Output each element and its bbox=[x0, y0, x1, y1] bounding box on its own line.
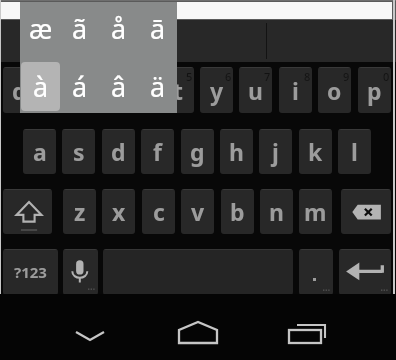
staticText: l bbox=[351, 136, 358, 167]
button[interactable]: Home bbox=[172, 316, 224, 350]
staticText: b bbox=[230, 196, 245, 227]
staticText: o bbox=[327, 75, 342, 106]
staticText: s bbox=[73, 136, 85, 167]
button[interactable]: l bbox=[338, 129, 371, 174]
staticText: v bbox=[191, 196, 205, 227]
staticText: x bbox=[112, 196, 126, 227]
staticText: a bbox=[33, 136, 47, 167]
staticText: p bbox=[367, 75, 382, 106]
button[interactable]: s bbox=[62, 129, 95, 174]
button[interactable]: k bbox=[299, 129, 332, 174]
staticText: ã bbox=[72, 10, 88, 47]
button[interactable]: v bbox=[181, 189, 214, 234]
staticText: h bbox=[229, 136, 244, 167]
staticText: 9 bbox=[343, 69, 350, 84]
staticText: ?123 bbox=[14, 262, 47, 282]
button[interactable]: o bbox=[318, 67, 351, 113]
button[interactable]: Voice input bbox=[63, 249, 98, 295]
button[interactable]: p bbox=[358, 67, 391, 113]
button[interactable]: z bbox=[63, 189, 96, 234]
staticText: å bbox=[111, 10, 127, 47]
button[interactable]: d bbox=[102, 129, 135, 174]
staticText: c bbox=[153, 196, 165, 227]
button[interactable]: ä bbox=[138, 62, 177, 111]
staticText: g bbox=[190, 136, 205, 167]
button[interactable]: Period bbox=[299, 249, 333, 295]
button[interactable]: f bbox=[141, 129, 174, 174]
button[interactable]: á bbox=[60, 62, 99, 111]
staticText: 8 bbox=[304, 69, 311, 84]
button[interactable]: â bbox=[99, 62, 138, 111]
button[interactable]: h bbox=[220, 129, 253, 174]
staticText: ā bbox=[150, 10, 166, 47]
staticText: u bbox=[248, 75, 263, 106]
button[interactable]: Recent apps bbox=[283, 316, 333, 350]
staticText: i bbox=[292, 75, 299, 106]
staticText: 5 bbox=[186, 69, 193, 84]
staticText: á bbox=[72, 68, 88, 105]
button[interactable]: ã bbox=[60, 4, 99, 53]
button[interactable]: Space bbox=[103, 249, 293, 295]
button[interactable]: Hide keyboard bbox=[66, 320, 114, 350]
button[interactable]: i bbox=[279, 67, 312, 113]
staticText: ä bbox=[150, 68, 166, 105]
staticText: 0 bbox=[383, 69, 390, 84]
staticText: æ bbox=[29, 10, 53, 47]
button[interactable]: ā bbox=[138, 4, 177, 53]
button[interactable]: Enter bbox=[339, 249, 391, 295]
button[interactable]: m bbox=[299, 189, 332, 234]
staticText: f bbox=[153, 136, 162, 167]
button[interactable]: Symbols bbox=[3, 249, 58, 295]
button[interactable]: æ bbox=[21, 4, 60, 53]
staticText: d bbox=[111, 136, 126, 167]
staticText: 6 bbox=[225, 69, 232, 84]
staticText: k bbox=[308, 136, 323, 167]
staticText: n bbox=[269, 196, 284, 227]
staticText: w bbox=[49, 75, 69, 106]
staticText: m bbox=[304, 196, 327, 227]
button[interactable]: u bbox=[239, 67, 272, 113]
button[interactable]: a bbox=[23, 129, 56, 174]
button[interactable]: w bbox=[42, 67, 75, 113]
staticText: y bbox=[210, 75, 224, 106]
staticText: â bbox=[111, 68, 127, 105]
staticText: j bbox=[272, 136, 279, 167]
button[interactable]: n bbox=[260, 189, 293, 234]
button[interactable]: q bbox=[3, 67, 36, 113]
button[interactable]: t bbox=[161, 67, 194, 113]
button[interactable]: r bbox=[121, 67, 154, 113]
button[interactable]: x bbox=[102, 189, 135, 234]
button[interactable]: y bbox=[200, 67, 233, 113]
button[interactable]: e bbox=[82, 67, 115, 113]
staticText: q bbox=[12, 75, 27, 106]
button[interactable]: g bbox=[181, 129, 214, 174]
button[interactable]: à bbox=[21, 62, 60, 111]
button[interactable]: Delete bbox=[341, 189, 391, 234]
staticText: à bbox=[33, 68, 49, 105]
button[interactable]: å bbox=[99, 4, 138, 53]
button[interactable]: b bbox=[221, 189, 254, 234]
staticText: 7 bbox=[264, 69, 271, 84]
button[interactable]: j bbox=[259, 129, 292, 174]
staticText: t bbox=[173, 75, 183, 106]
button[interactable]: Shift bbox=[3, 189, 52, 234]
staticText: z bbox=[74, 196, 86, 227]
button[interactable]: c bbox=[142, 189, 175, 234]
